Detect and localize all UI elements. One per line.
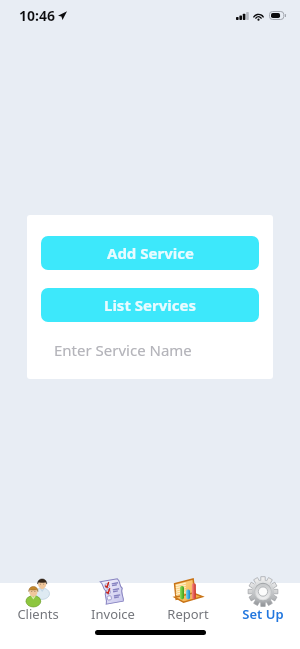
staticText: Add Service — [107, 243, 194, 263]
staticText: Report — [167, 605, 209, 623]
staticText: Enter Service Name — [54, 340, 192, 360]
button[interactable]: List Services — [41, 288, 259, 322]
button[interactable]: Clients — [0, 577, 75, 649]
other: Invoice — [97, 577, 129, 605]
button[interactable]: Set Up — [225, 577, 300, 649]
staticText: Set Up — [242, 605, 284, 623]
button[interactable]: Invoice — [75, 577, 150, 649]
button[interactable]: Enter Service Name — [41, 334, 259, 366]
button[interactable]: Add Service — [41, 236, 259, 270]
other: Report — [172, 577, 204, 605]
staticText: Clients — [17, 605, 59, 623]
other: Set Up — [247, 577, 279, 605]
button[interactable]: Report — [150, 577, 225, 649]
other: Clients — [22, 577, 54, 605]
staticText: List Services — [104, 295, 197, 315]
staticText: 10:46 — [19, 6, 55, 25]
staticText: Invoice — [91, 605, 135, 623]
